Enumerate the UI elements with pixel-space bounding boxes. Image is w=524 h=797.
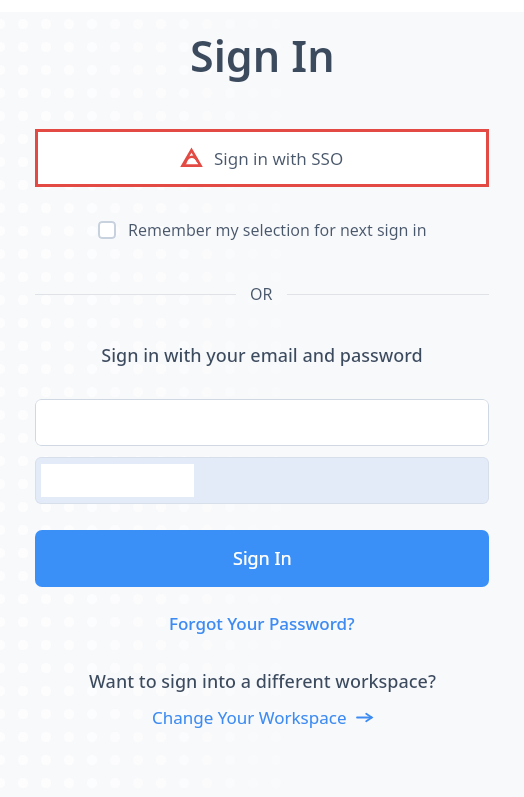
button[interactable]: Forgot Your Password? [159,608,365,639]
button[interactable] [35,457,489,504]
staticText: Sign in with SSO [214,147,344,170]
button[interactable]: Change Your Workspace [142,702,383,733]
button[interactable]: Sign in with SSO [35,129,489,187]
button[interactable]: Sign In [35,530,489,587]
other: Change Your Workspace [356,709,373,726]
staticText: Change Your Workspace [152,706,347,729]
staticText: Sign In [233,546,292,571]
staticText: Sign In [190,26,335,85]
staticText: Forgot Your Password? [169,612,355,635]
button[interactable]: Remember my selection for next sign in [92,215,433,245]
staticText: Sign in with your email and password [101,343,423,368]
staticText: OR [250,283,273,305]
button[interactable] [35,399,489,446]
staticText: Remember my selection for next sign in [128,219,427,241]
staticText: Want to sign into a different workspace? [89,669,436,694]
